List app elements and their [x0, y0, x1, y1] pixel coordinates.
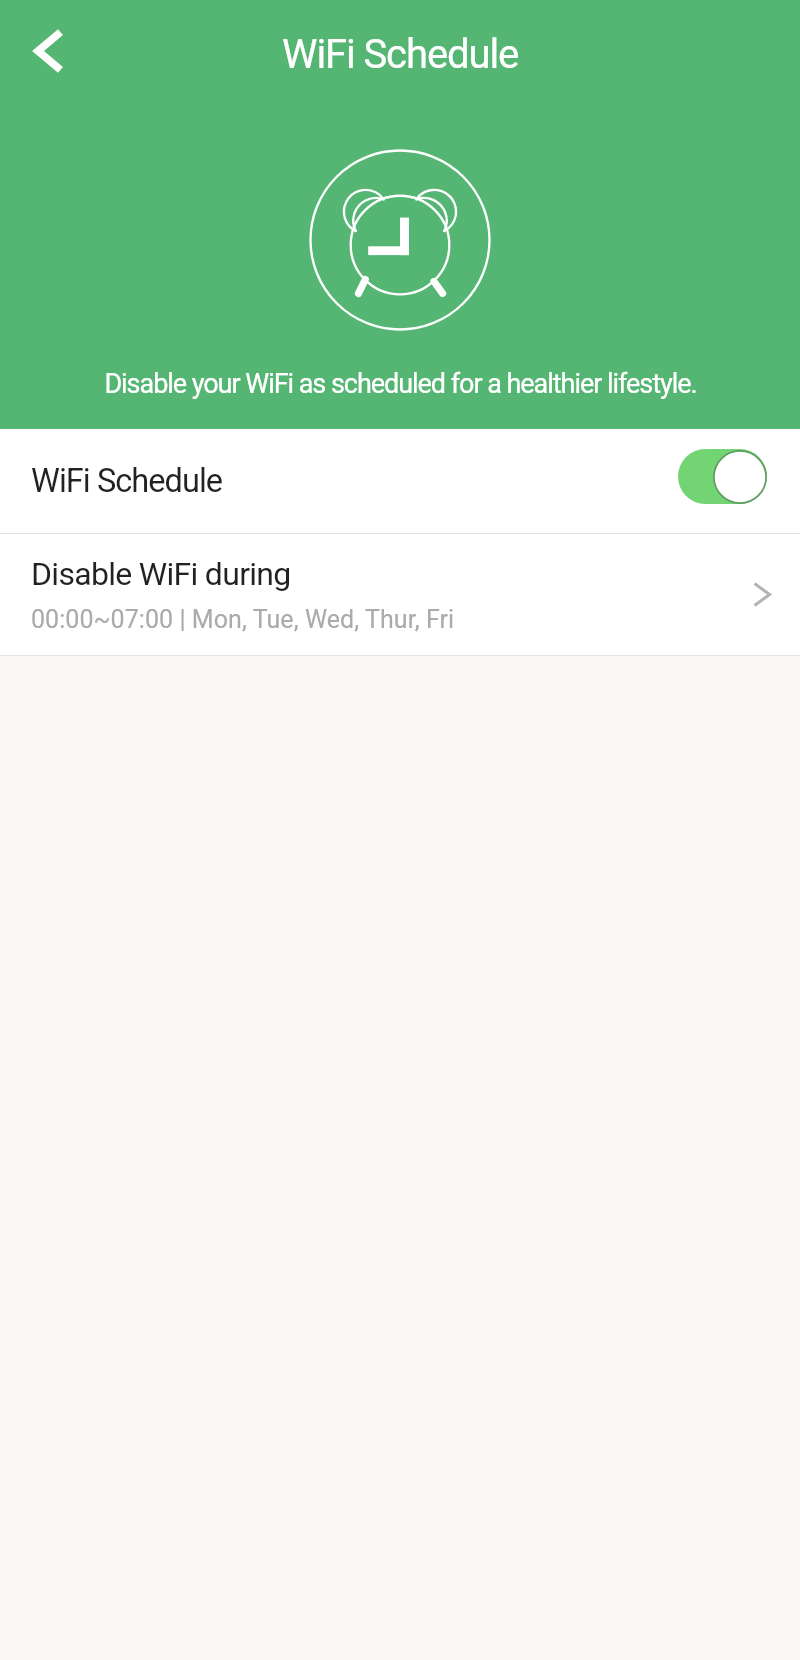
- button[interactable]: Disable WiFi during: [0, 534, 800, 655]
- staticText: Disable your WiFi as scheduled for a hea…: [104, 368, 697, 400]
- staticText: 00:00~07:00 | Mon, Tue, Wed, Thur, Fri: [31, 605, 455, 634]
- button[interactable]: WiFi Schedule toggle: [678, 449, 767, 504]
- button[interactable]: Back: [15, 18, 81, 84]
- staticText: WiFi Schedule: [31, 462, 223, 500]
- staticText: Disable WiFi during: [31, 555, 291, 593]
- button[interactable]: WiFi Schedule: [0, 429, 800, 533]
- staticText: WiFi Schedule: [282, 31, 519, 78]
